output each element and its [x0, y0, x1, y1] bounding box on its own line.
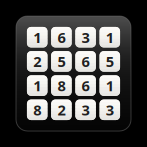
button[interactable]: 8: [27, 99, 47, 120]
staticText: 3: [82, 27, 90, 47]
staticText: 6: [82, 76, 90, 95]
button[interactable]: 2: [51, 99, 72, 120]
button[interactable]: 1: [27, 75, 47, 96]
staticText: 3: [106, 100, 114, 120]
button[interactable]: 6: [75, 75, 96, 96]
staticText: 6: [82, 52, 90, 71]
staticText: 8: [57, 76, 65, 95]
staticText: 1: [33, 76, 41, 95]
button[interactable]: 3: [75, 27, 96, 47]
button[interactable]: 1: [99, 75, 120, 96]
button[interactable]: 6: [75, 51, 96, 72]
button[interactable]: 5: [99, 51, 120, 72]
staticText: 3: [82, 100, 90, 120]
staticText: 1: [106, 76, 114, 95]
staticText: 5: [106, 52, 114, 71]
staticText: 1: [106, 27, 114, 47]
button[interactable]: 5: [51, 51, 72, 72]
button[interactable]: 1: [99, 27, 120, 47]
staticText: 5: [57, 52, 65, 71]
staticText: 8: [33, 100, 41, 120]
button[interactable]: 2: [27, 51, 47, 72]
button[interactable]: 3: [99, 99, 120, 120]
button[interactable]: 8: [51, 75, 72, 96]
staticText: 2: [33, 52, 41, 71]
button[interactable]: 6: [51, 27, 72, 47]
button[interactable]: 1: [27, 27, 47, 47]
staticText: 6: [57, 27, 65, 47]
staticText: 2: [57, 100, 65, 120]
button[interactable]: 3: [75, 99, 96, 120]
staticText: 1: [33, 27, 41, 47]
